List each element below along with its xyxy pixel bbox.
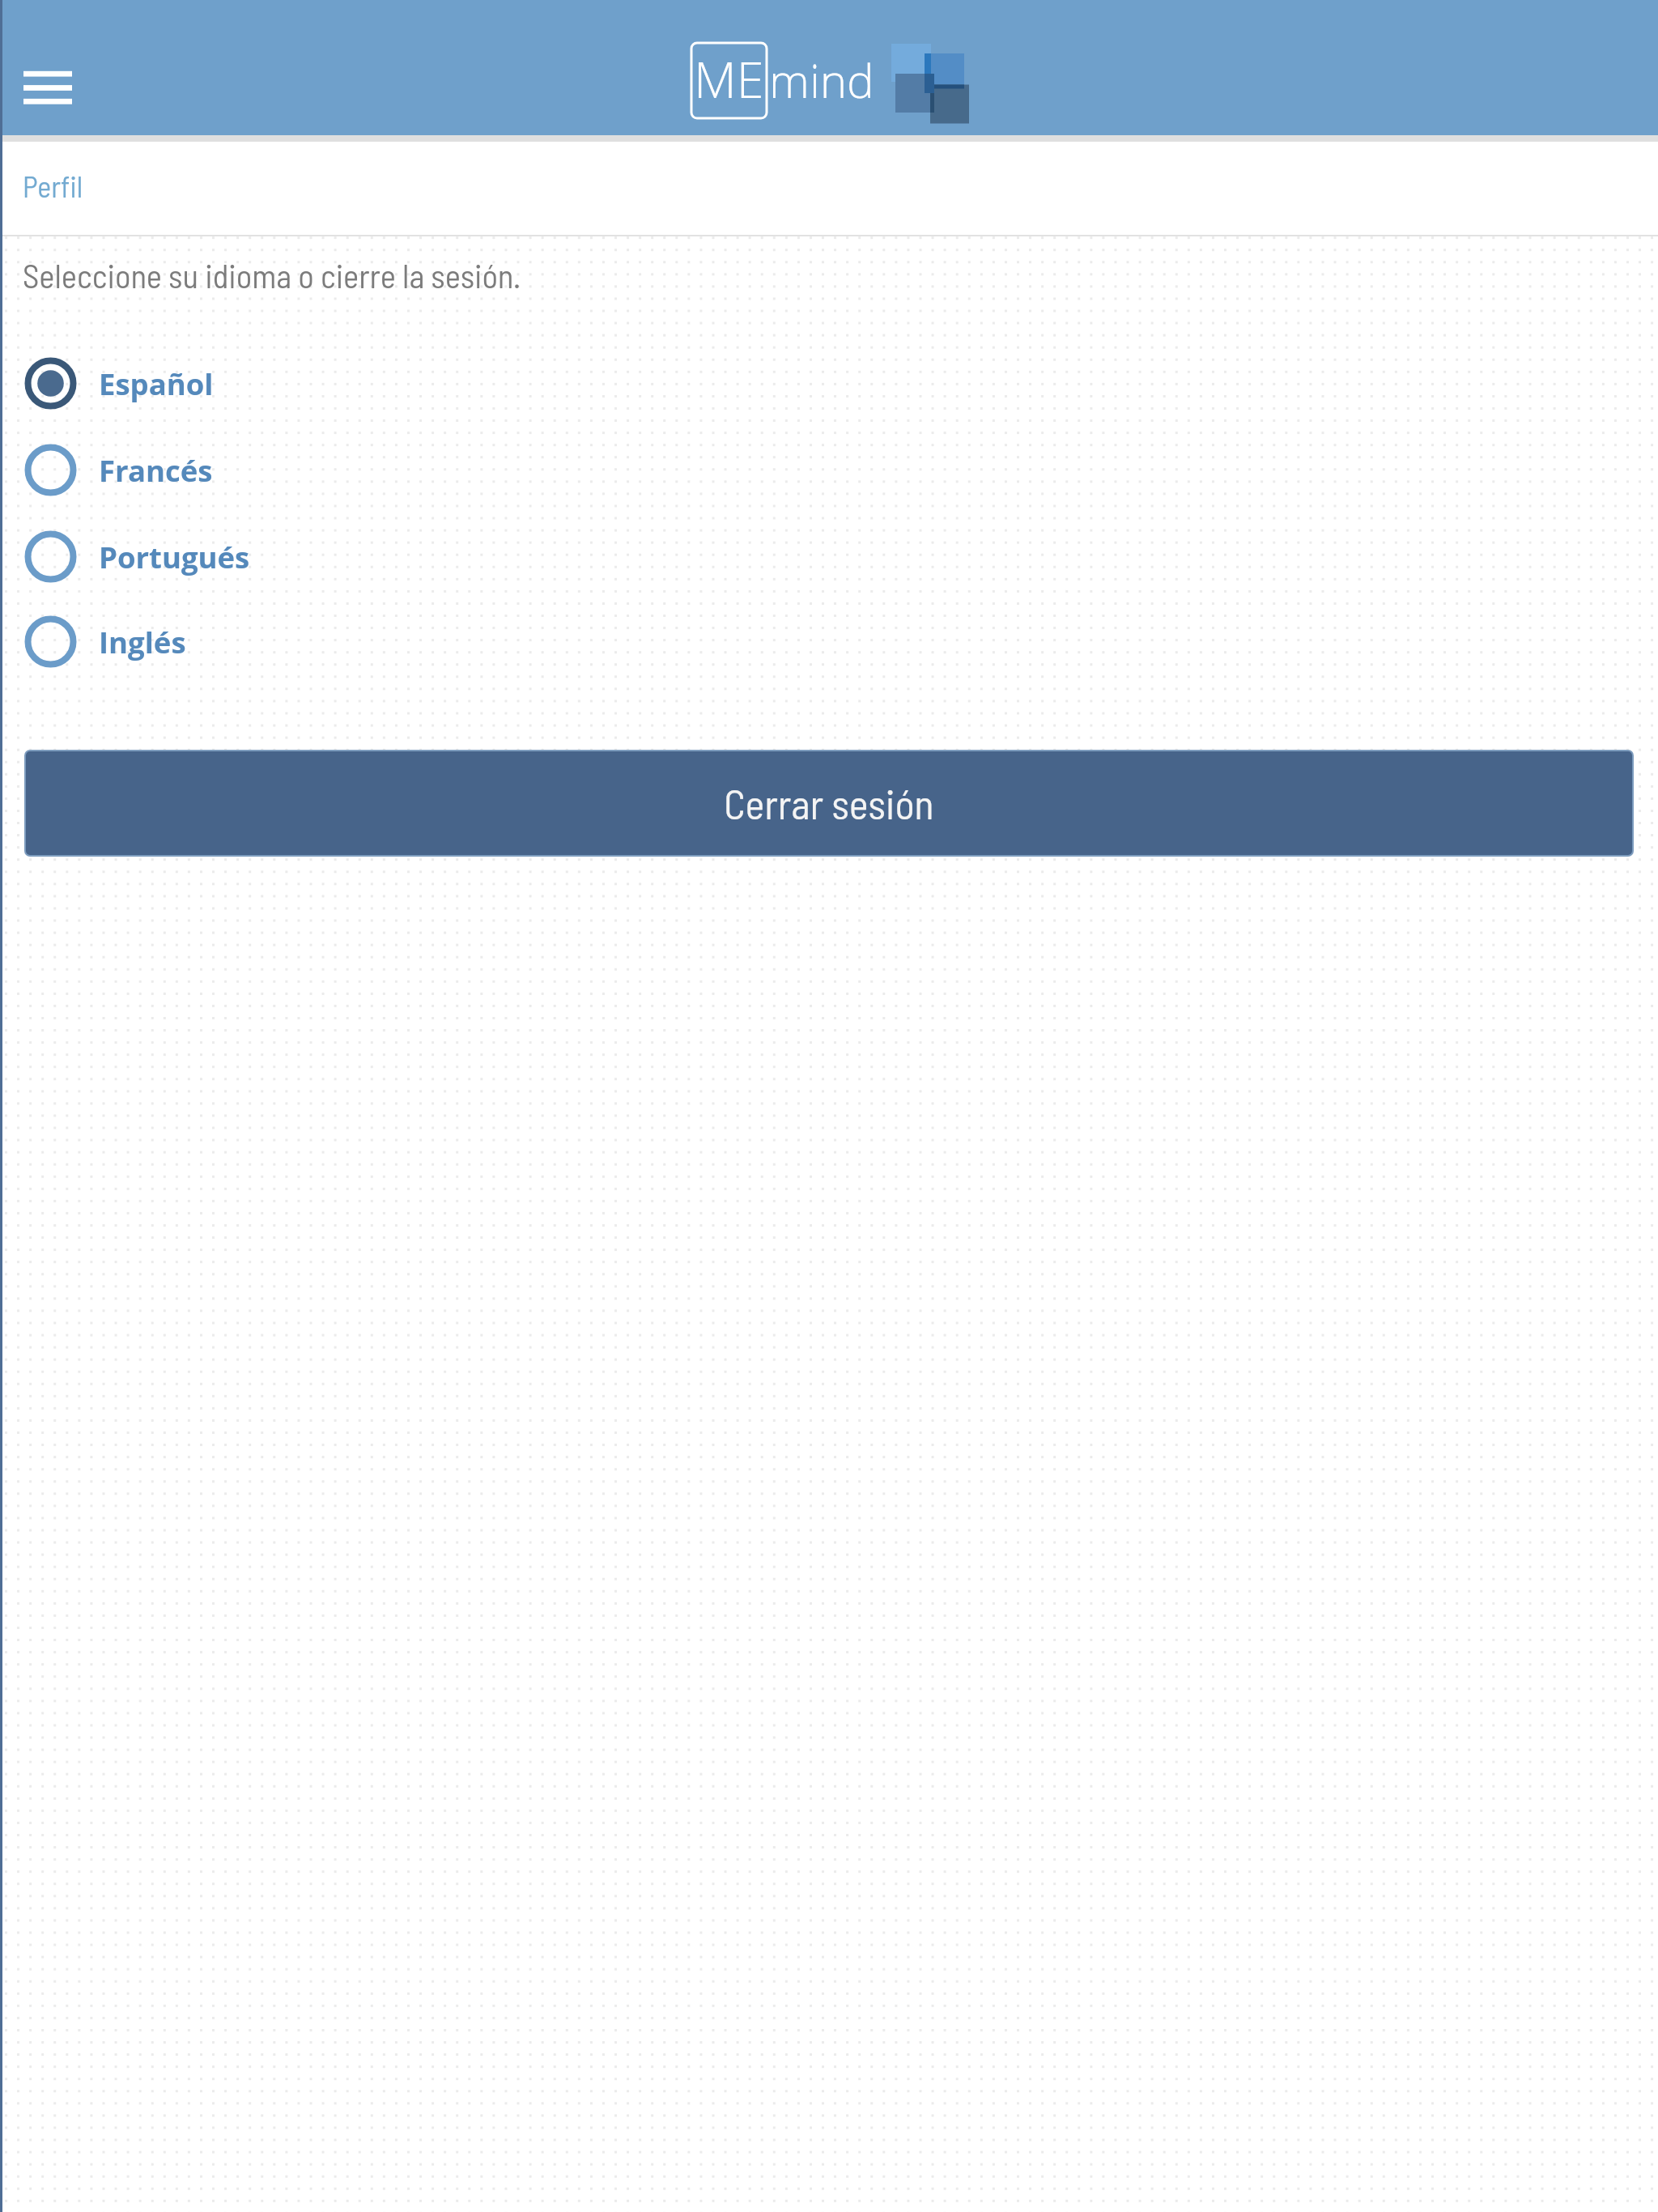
staticText: Seleccione su idioma o cierre la sesión.	[23, 255, 521, 295]
button[interactable]: Francés	[0, 443, 1658, 497]
button[interactable]: Abrir menú	[0, 21, 96, 114]
button[interactable]: Perfil	[23, 168, 83, 203]
button[interactable]: Cerrar sesión	[26, 751, 1632, 855]
staticText: Inglés	[99, 622, 186, 662]
staticText: Francés	[99, 450, 213, 491]
button[interactable]: Español	[0, 356, 1658, 410]
staticText: Cerrar sesión	[724, 779, 934, 827]
staticText: Portugués	[99, 537, 250, 577]
button[interactable]: Inglés	[0, 615, 1658, 669]
button[interactable]: Portugués	[0, 530, 1658, 584]
staticText: ME	[694, 45, 764, 113]
staticText: Español	[99, 364, 214, 404]
staticText: mind	[769, 49, 874, 112]
